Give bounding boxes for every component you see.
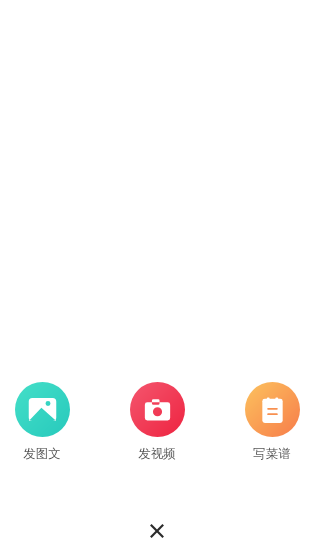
staticText: 写菜谱 <box>253 446 291 462</box>
button[interactable]: 写菜谱 <box>238 382 306 462</box>
button[interactable]: 发视频 <box>123 382 191 462</box>
staticText: 发视频 <box>138 446 176 462</box>
button[interactable]: 关闭 <box>135 509 179 550</box>
button[interactable]: 发图文 <box>8 382 76 462</box>
staticText: 发图文 <box>23 446 61 462</box>
